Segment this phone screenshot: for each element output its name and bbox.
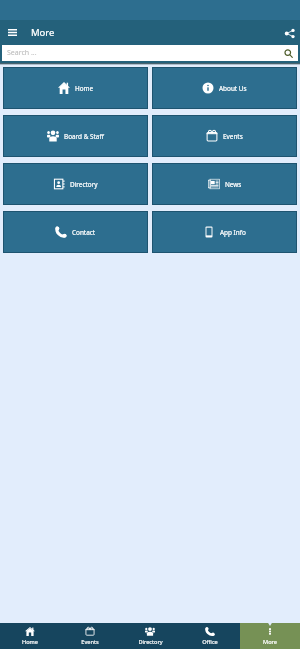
button[interactable]: Share — [281, 24, 299, 42]
button[interactable]: Contact — [3, 211, 148, 253]
staticText: More — [263, 638, 277, 646]
button[interactable]: More — [240, 623, 300, 649]
button[interactable]: Directory — [3, 163, 148, 205]
staticText: Search ... — [7, 48, 37, 58]
staticText: Office — [202, 638, 218, 646]
staticText: About Us — [219, 84, 247, 93]
staticText: App Info — [220, 228, 246, 237]
staticText: Board & Staff — [64, 132, 104, 141]
button[interactable]: Home — [0, 623, 60, 649]
button[interactable]: Search ... — [2, 45, 298, 61]
button[interactable]: Directory — [120, 623, 180, 649]
button[interactable]: Events — [60, 623, 120, 649]
staticText: Home — [22, 638, 38, 646]
button[interactable]: News — [152, 163, 297, 205]
button[interactable]: Events — [152, 115, 297, 157]
button[interactable]: Office — [180, 623, 240, 649]
button[interactable]: Menu — [4, 24, 21, 41]
staticText: Events — [223, 132, 243, 141]
staticText: News — [225, 180, 242, 189]
staticText: Contact — [72, 228, 96, 237]
staticText: Directory — [70, 180, 98, 189]
staticText: Home — [75, 84, 94, 93]
button[interactable]: App Info — [152, 211, 297, 253]
button[interactable]: About Us — [152, 67, 297, 109]
staticText: Events — [81, 638, 99, 646]
staticText: More — [31, 26, 55, 39]
staticText: Directory — [138, 638, 163, 646]
button[interactable]: Home — [3, 67, 148, 109]
button[interactable]: Board & Staff — [3, 115, 148, 157]
